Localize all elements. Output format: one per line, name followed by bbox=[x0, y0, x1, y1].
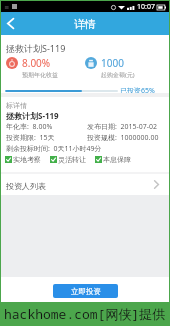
staticText: 投资人列表 bbox=[6, 181, 154, 191]
staticText: 预期年化收益 bbox=[22, 71, 58, 79]
staticText: 8.00% bbox=[22, 56, 51, 70]
staticText: 拯救计划S-119 bbox=[6, 42, 66, 54]
button[interactable]: 立即投资 bbox=[53, 284, 118, 298]
staticText: 发布日期: 2015-07-02 bbox=[87, 122, 158, 132]
staticText: 本息保障 bbox=[103, 155, 131, 164]
button[interactable]: Back bbox=[0, 12, 21, 35]
staticText: 起购金额(元) bbox=[101, 71, 135, 79]
staticText: 灵活转让 bbox=[58, 155, 86, 164]
staticText: 投资规模: 1000000.00 bbox=[87, 133, 159, 143]
staticText: 实地考察 bbox=[13, 155, 41, 164]
staticText: 年化率: 8.00% bbox=[6, 122, 53, 132]
staticText: 详情 bbox=[74, 17, 96, 31]
staticText: ≡ bbox=[4, 3, 10, 10]
staticText: 立即投资 bbox=[71, 287, 101, 296]
staticText: 拯救计划S-119 bbox=[6, 110, 59, 121]
staticText: 投资期限: 15天 bbox=[6, 133, 55, 143]
staticText: 1000 bbox=[101, 56, 124, 70]
staticText: 标详情 bbox=[6, 101, 27, 110]
button[interactable]: 投资人列表 bbox=[0, 174, 170, 195]
staticText: 已投资65% bbox=[120, 86, 155, 96]
staticText: 10:07 bbox=[137, 2, 155, 12]
staticText: 剩余投标时间: 0天11小时49分 bbox=[6, 144, 102, 154]
staticText: hackhome.com[网侠]提供 bbox=[4, 305, 166, 323]
